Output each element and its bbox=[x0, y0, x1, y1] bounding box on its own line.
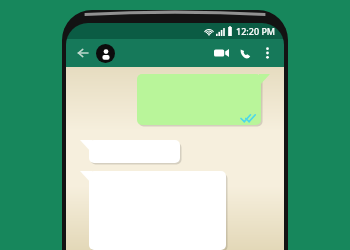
button[interactable]: More options bbox=[258, 44, 276, 62]
button[interactable] bbox=[80, 140, 180, 163]
button[interactable]: Video call bbox=[211, 43, 231, 63]
button[interactable] bbox=[137, 74, 270, 125]
staticText: 12:20 PM bbox=[236, 25, 276, 37]
button[interactable]: Voice call bbox=[235, 43, 255, 63]
button[interactable]: Back bbox=[74, 44, 92, 62]
button[interactable]: Contact profile bbox=[96, 44, 115, 63]
button[interactable] bbox=[80, 171, 226, 250]
